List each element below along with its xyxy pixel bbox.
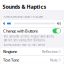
button[interactable]: Ringtone [0, 47, 63, 55]
button[interactable]: Text Tone [0, 56, 63, 64]
staticText: Text Tone [3, 57, 19, 62]
staticText: RINGTONE AND ALERT VOLUME [3, 15, 42, 18]
staticText: SOUNDS AND HAPTIC PATTERNS [3, 43, 44, 46]
staticText: Ringtone [3, 49, 17, 54]
staticText: The volume of the ringer and alerts can … [3, 35, 53, 42]
staticText: Sounds & Haptics [2, 3, 46, 10]
staticText: Reflection [42, 49, 58, 54]
staticText: Note [50, 57, 58, 62]
staticText: Change with Buttons [3, 28, 38, 33]
